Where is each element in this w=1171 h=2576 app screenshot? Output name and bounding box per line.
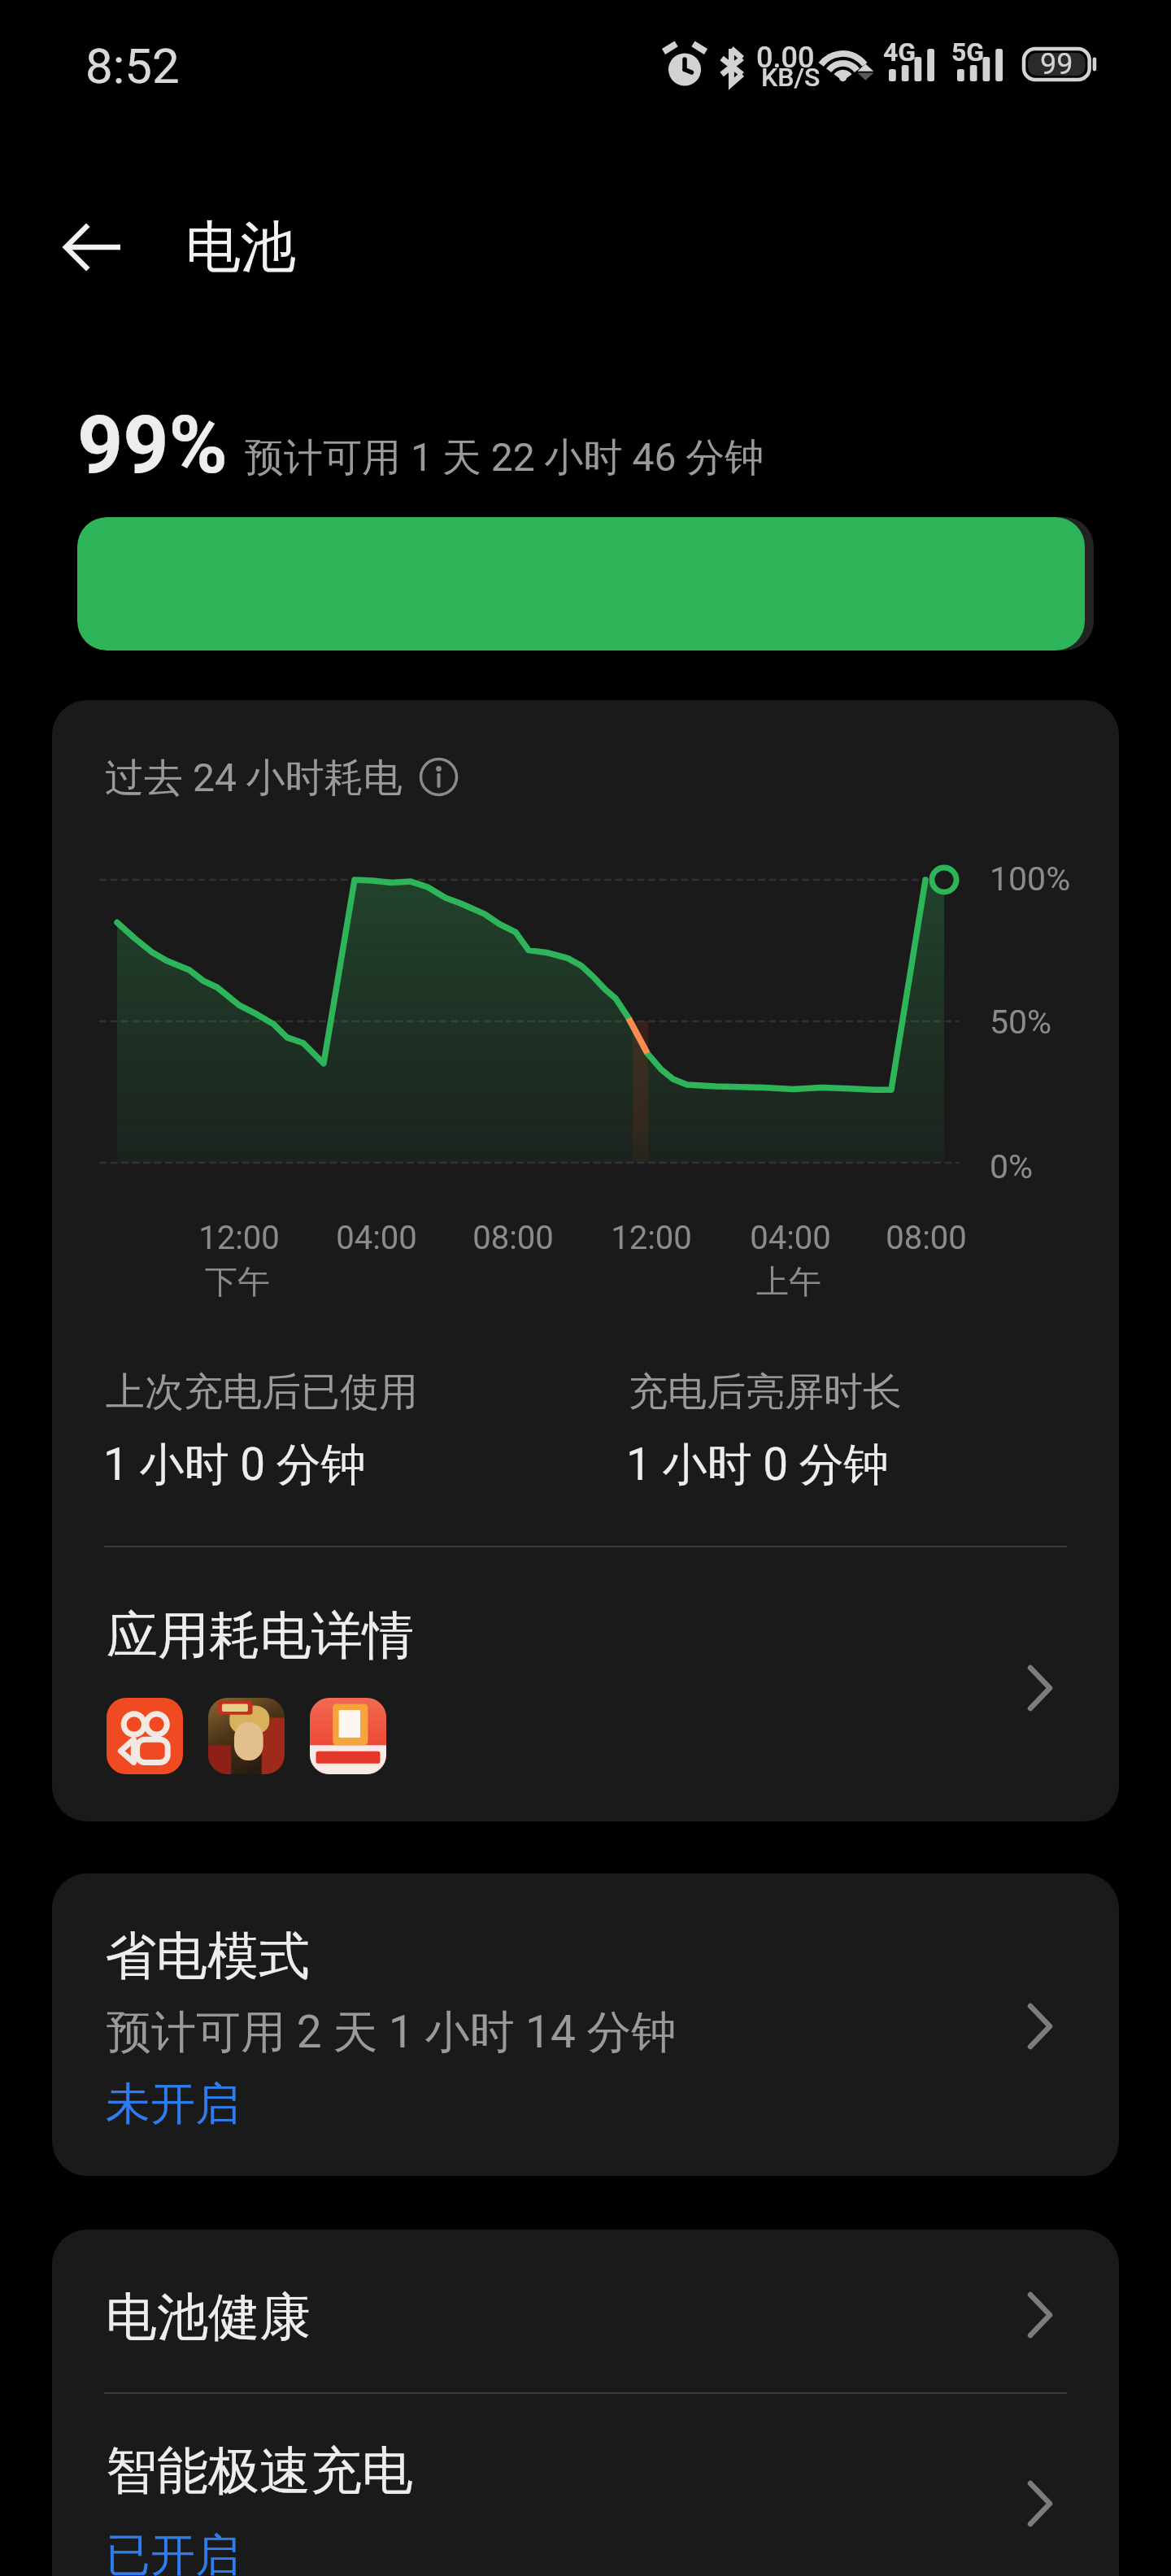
staticText: 电池健康 xyxy=(106,2285,311,2349)
staticText: 4G xyxy=(883,37,916,67)
staticText: 已开启 xyxy=(106,2527,240,2576)
staticText: 50% xyxy=(990,1003,1052,1042)
staticText: 省电模式 xyxy=(105,1924,310,1988)
staticText: KB/S xyxy=(761,62,821,93)
staticText: 1 小时 0 分钟 xyxy=(103,1437,366,1493)
staticText: 电池 xyxy=(185,213,296,283)
staticText: 04:00 xyxy=(693,1219,888,1257)
button[interactable]: Back xyxy=(35,185,149,309)
button[interactable] xyxy=(52,1873,1119,2176)
staticText: 100% xyxy=(990,859,1071,899)
button[interactable] xyxy=(52,2230,1119,2392)
staticText: 上次充电后已使用 xyxy=(106,1368,418,1416)
staticText: 99% xyxy=(77,398,228,492)
staticText: 8:52 xyxy=(85,37,180,94)
staticText: 04:00 xyxy=(279,1219,474,1257)
staticText: 12:00 xyxy=(554,1219,749,1257)
staticText: 应用耗电详情 xyxy=(107,1603,414,1668)
staticText: 未开启 xyxy=(106,2076,240,2132)
staticText: 99 xyxy=(1040,47,1073,81)
staticText: 0% xyxy=(990,1147,1034,1186)
staticText: 充电后亮屏时长 xyxy=(629,1368,902,1416)
staticText: 预计可用 1 天 22 小时 46 分钟 xyxy=(245,433,764,482)
staticText: 过去 24 小时耗电 xyxy=(105,754,403,803)
button[interactable] xyxy=(52,2394,1119,2576)
staticText: 08:00 xyxy=(416,1219,611,1257)
staticText: 08:00 xyxy=(829,1219,1024,1257)
staticText: 1 小时 0 分钟 xyxy=(626,1437,889,1493)
staticText: 预计可用 2 天 1 小时 14 分钟 xyxy=(107,2004,677,2060)
staticText: 上午 xyxy=(691,1261,886,1302)
staticText: 12:00 xyxy=(141,1219,337,1257)
button[interactable] xyxy=(52,1542,1119,1821)
staticText: 0.00 xyxy=(756,41,815,75)
staticText: 5G xyxy=(951,37,985,67)
staticText: 下午 xyxy=(140,1261,335,1302)
staticText: 智能极速充电 xyxy=(106,2439,413,2503)
